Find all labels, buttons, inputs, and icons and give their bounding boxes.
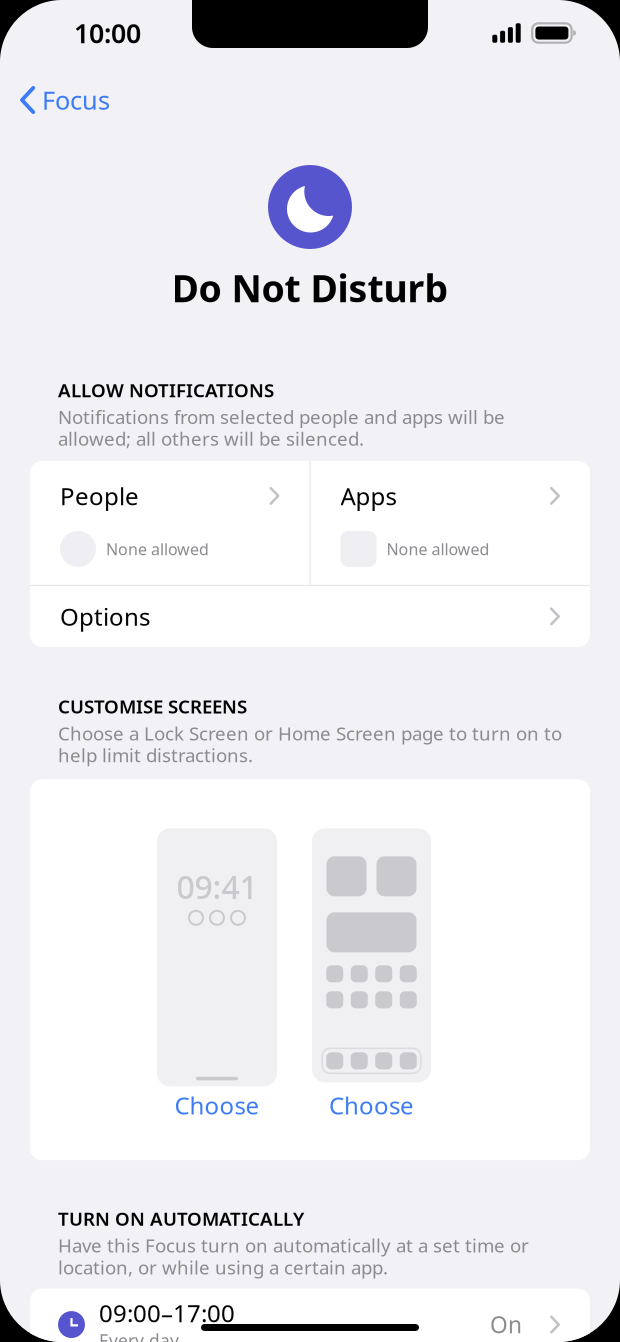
- staticText: Notifications from selected people and a…: [58, 404, 505, 451]
- staticText: People: [60, 480, 139, 512]
- staticText: On: [490, 1309, 522, 1340]
- button[interactable]: Focus: [0, 67, 124, 123]
- staticText: Have this Focus turn on automatically at…: [58, 1233, 529, 1280]
- button[interactable]: Choose: [317, 1082, 426, 1125]
- button[interactable]: Choose: [162, 1086, 271, 1125]
- staticText: 09:00–17:00: [99, 1297, 235, 1329]
- staticText: 10:00: [74, 15, 141, 51]
- staticText: Do Not Disturb: [171, 263, 448, 313]
- staticText: Every day: [99, 1329, 179, 1342]
- staticText: CUSTOMISE SCREENS: [58, 694, 247, 719]
- staticText: Apps: [340, 480, 396, 512]
- staticText: Choose: [329, 1089, 414, 1121]
- staticText: ALLOW NOTIFICATIONS: [58, 378, 274, 402]
- staticText: Choose: [174, 1089, 259, 1121]
- button[interactable]: Options: [30, 586, 590, 647]
- staticText: 09:41: [176, 865, 257, 908]
- button[interactable]: People: [30, 461, 309, 585]
- staticText: Choose a Lock Screen or Home Screen page…: [58, 721, 562, 767]
- staticText: TURN ON AUTOMATICALLY: [58, 1206, 304, 1231]
- button[interactable]: Apps: [310, 461, 590, 585]
- staticText: Options: [60, 600, 150, 632]
- button[interactable]: 09:00–17:00: [30, 1289, 590, 1342]
- staticText: None allowed: [386, 538, 489, 559]
- staticText: Focus: [42, 83, 110, 117]
- staticText: None allowed: [106, 538, 209, 559]
